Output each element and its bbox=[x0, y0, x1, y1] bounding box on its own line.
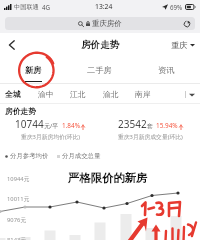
staticText: 分月参考均价 bbox=[10, 152, 49, 160]
staticText: 4G bbox=[42, 3, 51, 11]
staticText: 渝中 bbox=[38, 89, 54, 99]
staticText: 重庆 bbox=[171, 40, 188, 50]
button[interactable]: Refresh bbox=[183, 20, 191, 28]
staticText: 中国联通 bbox=[14, 3, 39, 11]
button[interactable] bbox=[185, 91, 195, 98]
button[interactable]: 渝中 bbox=[38, 89, 54, 99]
button[interactable]: Back bbox=[4, 37, 20, 53]
staticText: 9076元 bbox=[7, 216, 27, 224]
button[interactable]: 二手房 bbox=[66, 57, 133, 84]
button[interactable]: 南岸 bbox=[135, 89, 151, 99]
staticText: 10944元 bbox=[7, 175, 30, 183]
staticText: 23542 bbox=[118, 117, 147, 131]
button[interactable]: 重庆 bbox=[171, 40, 195, 50]
staticText: 1.84% bbox=[62, 121, 80, 130]
button[interactable]: 渝北 bbox=[103, 89, 119, 99]
staticText: 分月成交总量 bbox=[62, 152, 101, 160]
staticText: 重庆3月新房均价(环比) bbox=[21, 133, 80, 141]
staticText: 房价走势 bbox=[81, 39, 120, 51]
staticText: 69% bbox=[170, 3, 183, 11]
staticText: 10744 bbox=[15, 117, 44, 131]
staticText: 全城 bbox=[5, 89, 21, 99]
staticText: 8143元 bbox=[7, 236, 27, 240]
button[interactable]: 新房 bbox=[0, 57, 66, 84]
staticText: 13:24 bbox=[95, 2, 113, 11]
staticText: 重庆3月新房成交量(环比) bbox=[118, 133, 183, 141]
button[interactable]: 江北 bbox=[70, 89, 86, 99]
staticText: 房价走势 bbox=[5, 106, 37, 116]
staticText: 重庆房价 bbox=[92, 19, 122, 28]
staticText: 元/平 bbox=[44, 122, 59, 130]
button[interactable]: 资讯 bbox=[133, 57, 200, 84]
staticText: 新房 bbox=[25, 65, 42, 75]
staticText: 15.94% bbox=[156, 121, 178, 130]
staticText: 江北 bbox=[70, 89, 86, 99]
staticText: 渝北 bbox=[103, 89, 119, 99]
staticText: 严格限价的新房 bbox=[68, 171, 148, 185]
button[interactable]: 全城 bbox=[5, 89, 21, 99]
staticText: 10011元 bbox=[7, 195, 30, 203]
staticText: 资讯 bbox=[158, 65, 175, 75]
button[interactable]: 重庆房价 bbox=[5, 17, 195, 30]
staticText: 南岸 bbox=[135, 89, 151, 99]
staticText: 套 bbox=[147, 122, 153, 130]
staticText: 二手房 bbox=[87, 65, 112, 75]
